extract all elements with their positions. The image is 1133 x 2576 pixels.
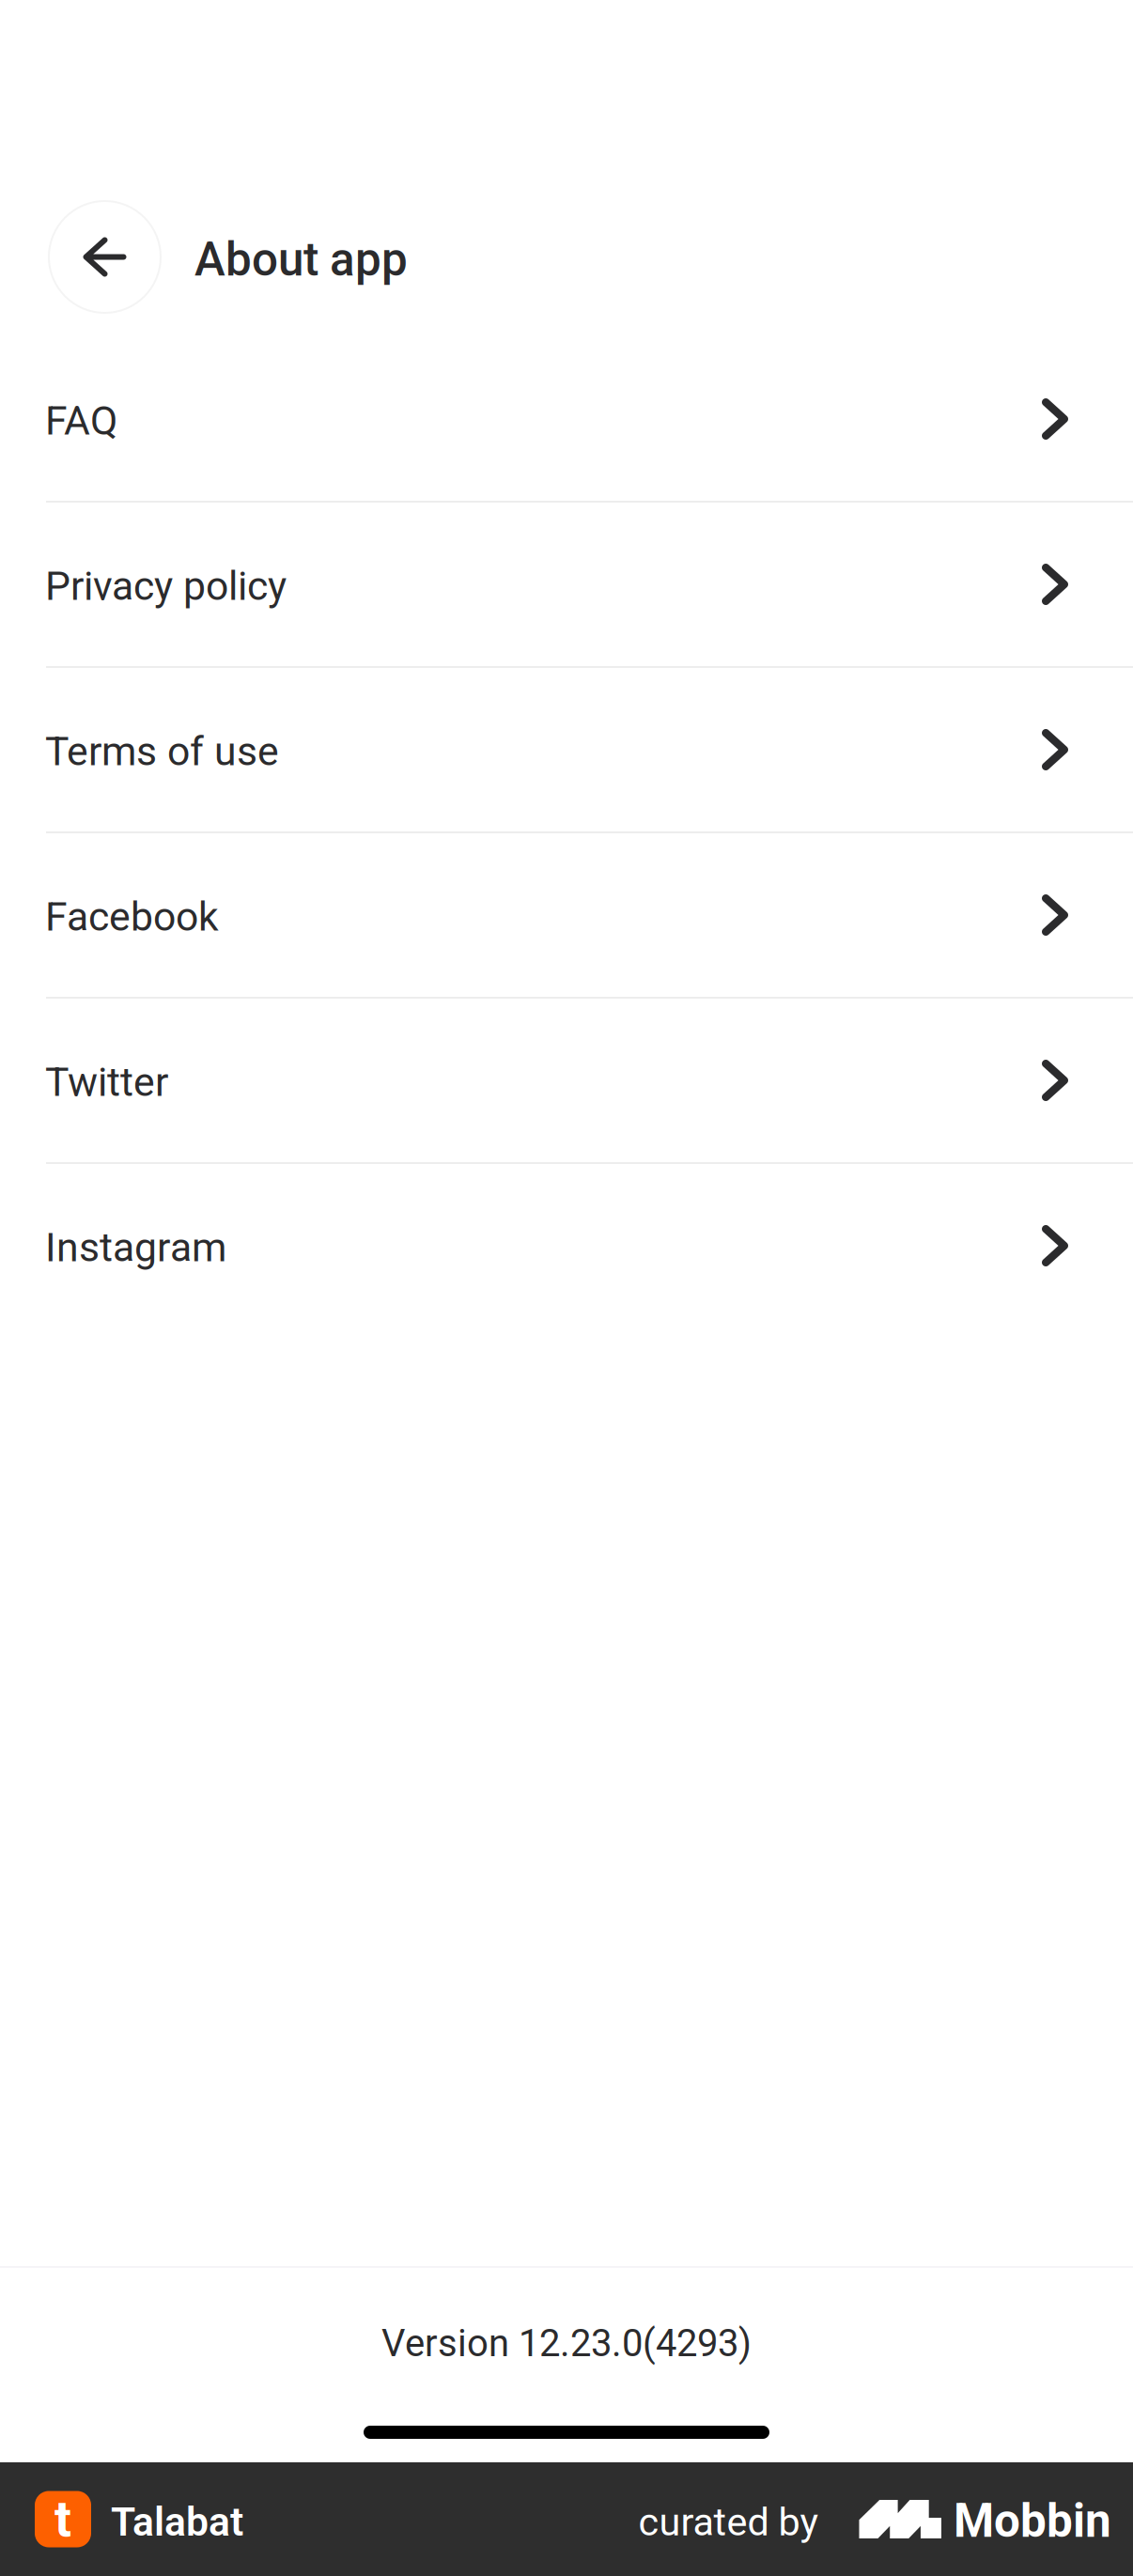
button[interactable]: Instagram: [0, 1164, 1133, 1327]
staticText: Talabat: [111, 2498, 243, 2545]
staticText: Privacy policy: [45, 563, 287, 610]
button[interactable]: Facebook: [0, 833, 1133, 997]
button[interactable]: Twitter: [0, 999, 1133, 1162]
staticText: curated by: [638, 2499, 819, 2545]
staticText: FAQ: [45, 397, 117, 444]
staticText: Twitter: [45, 1059, 168, 1106]
button[interactable]: FAQ: [0, 337, 1133, 501]
staticText: About app: [194, 233, 408, 287]
staticText: Instagram: [45, 1224, 226, 1271]
button[interactable]: Privacy policy: [0, 503, 1133, 666]
button[interactable]: Terms of use: [0, 668, 1133, 831]
staticText: Version 12.23.0(4293): [381, 2321, 752, 2365]
staticText: Terms of use: [45, 728, 279, 775]
staticText: Mobbin: [954, 2494, 1111, 2548]
staticText: t: [54, 2490, 71, 2549]
staticText: Facebook: [45, 893, 219, 940]
button[interactable]: Back: [49, 201, 161, 313]
